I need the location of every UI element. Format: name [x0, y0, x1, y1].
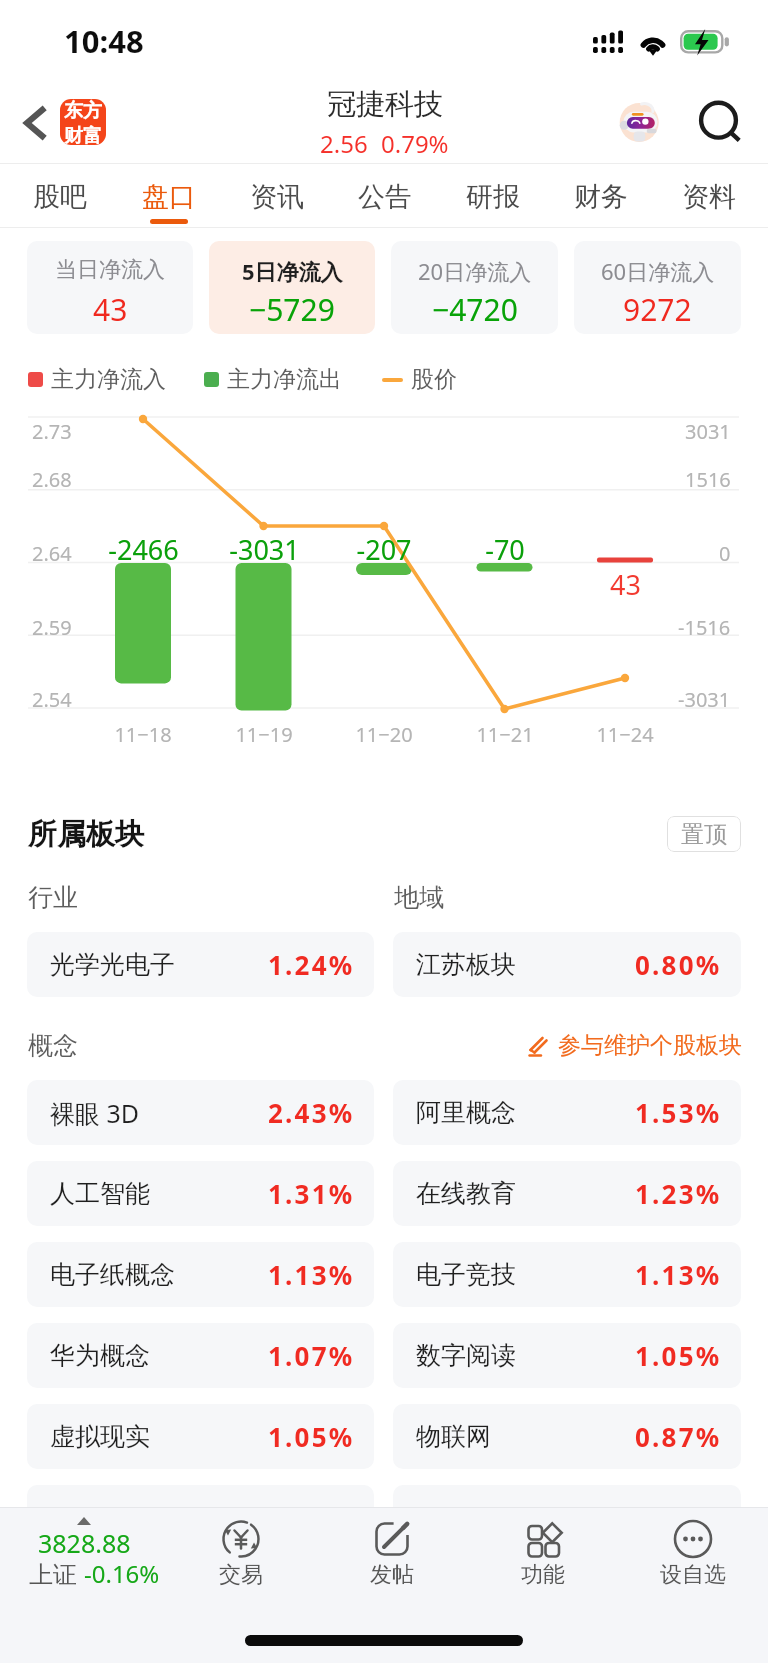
staticText: 虚拟现实	[50, 1421, 150, 1452]
staticText: 功能	[521, 1561, 565, 1589]
button[interactable]: 功能	[467, 1508, 618, 1603]
staticText: -207	[356, 531, 412, 568]
button[interactable]: 电子纸概念	[27, 1242, 374, 1307]
staticText: 3031	[685, 418, 731, 445]
button[interactable]	[27, 1485, 374, 1550]
staticText: -3031	[678, 686, 731, 713]
staticText: 11−19	[235, 721, 293, 748]
staticText: 资讯	[250, 180, 304, 214]
button[interactable]: 置顶	[667, 816, 741, 852]
staticText: 主力净流出	[227, 365, 342, 394]
button[interactable]: 研报	[439, 164, 547, 228]
staticText: 财务	[574, 180, 628, 214]
staticText: 人工智能	[50, 1178, 150, 1209]
staticText: 1.07%	[268, 1338, 355, 1373]
staticText: 11−18	[114, 721, 172, 748]
staticText: 1.13%	[635, 1257, 722, 1292]
staticText: 1516	[685, 466, 731, 493]
staticText: 江苏板块	[416, 949, 516, 980]
staticText: 10:48	[64, 20, 144, 62]
staticText: 资料	[682, 180, 736, 214]
button[interactable]: 资讯	[223, 164, 331, 228]
staticText: 1.53%	[635, 1095, 722, 1130]
button[interactable]: 20日净流入	[391, 241, 558, 334]
button[interactable]: 江苏板块	[393, 932, 741, 997]
staticText: 电子纸概念	[50, 1259, 175, 1290]
staticText: 发帖	[370, 1561, 414, 1589]
staticText: 2.64	[32, 540, 72, 567]
staticText: -1516	[678, 614, 731, 641]
staticText: 2.56	[320, 127, 368, 160]
staticText: 光学光电子	[50, 949, 175, 980]
staticText: 上证	[29, 1557, 84, 1590]
button[interactable]: 裸眼 3D	[27, 1080, 374, 1145]
staticText: 主力净流入	[51, 365, 166, 394]
staticText: -70	[485, 531, 525, 568]
staticText: 地域	[394, 882, 741, 913]
staticText: 2.73	[32, 418, 72, 445]
staticText: 60日净流入	[601, 256, 715, 286]
staticText: 11−21	[476, 721, 534, 748]
button[interactable]: 参与维护个股板块	[526, 1031, 742, 1060]
staticText: 0.79%	[381, 127, 449, 160]
staticText: 2.59	[32, 614, 72, 641]
button[interactable]: 发帖	[316, 1508, 467, 1603]
staticText: 置顶	[681, 820, 727, 849]
button[interactable]: Search	[696, 98, 742, 144]
button[interactable]: 电子竞技	[393, 1242, 741, 1307]
staticText: 东方	[64, 99, 102, 123]
staticText: 华为概念	[50, 1340, 150, 1371]
button[interactable]: East Money	[60, 99, 106, 145]
button[interactable]: 设自选	[617, 1508, 768, 1603]
button[interactable]	[393, 1485, 741, 1550]
button[interactable]: 当日净流入	[27, 241, 193, 334]
staticText: -2466	[108, 531, 179, 568]
button[interactable]: 股吧	[5, 164, 114, 228]
staticText: 1.23%	[635, 1176, 722, 1211]
button[interactable]: 数字阅读	[393, 1323, 741, 1388]
staticText: 20日净流入	[418, 256, 532, 286]
button[interactable]: 虚拟现实	[27, 1404, 374, 1469]
button[interactable]: 光学光电子	[27, 932, 374, 997]
staticText: 43	[610, 566, 641, 603]
staticText: 设自选	[660, 1561, 726, 1589]
staticText: 行业	[28, 882, 375, 913]
button[interactable]: Shanghai index	[0, 1508, 165, 1603]
staticText: 11−24	[596, 721, 654, 748]
staticText: 股价	[411, 365, 457, 394]
staticText: 43	[93, 289, 128, 330]
button[interactable]: 5日净流入	[209, 241, 375, 334]
button[interactable]: 在线教育	[393, 1161, 741, 1226]
button[interactable]: 财务	[547, 164, 655, 228]
staticText: 阿里概念	[416, 1097, 516, 1128]
button[interactable]: 物联网	[393, 1404, 741, 1469]
staticText: 股吧	[33, 180, 87, 214]
staticText: 11−20	[355, 721, 413, 748]
staticText: 1.31%	[268, 1176, 355, 1211]
button[interactable]: 盘口	[114, 164, 223, 228]
button[interactable]: 华为概念	[27, 1323, 374, 1388]
button[interactable]: 交易	[165, 1508, 316, 1603]
button[interactable]: 资料	[655, 164, 763, 228]
staticText: 0	[719, 540, 731, 567]
button[interactable]: 人工智能	[27, 1161, 374, 1226]
button[interactable]: 公告	[331, 164, 439, 228]
staticText: 概念	[28, 1030, 78, 1061]
staticText: 3828.88	[38, 1526, 131, 1560]
staticText: 数字阅读	[416, 1340, 516, 1371]
staticText: −5729	[249, 289, 335, 330]
button[interactable]: 60日净流入	[574, 241, 741, 334]
staticText: -0.16%	[84, 1557, 160, 1590]
button[interactable]: 阿里概念	[393, 1080, 741, 1145]
staticText: 盘口	[142, 180, 196, 214]
staticText: 2.54	[32, 686, 72, 713]
staticText: 2.43%	[268, 1095, 355, 1130]
staticText: −4720	[432, 289, 518, 330]
staticText: 冠捷科技	[327, 86, 443, 123]
button[interactable]: AI assistant	[617, 100, 662, 145]
staticText: 1.05%	[268, 1419, 355, 1454]
button[interactable]: Back	[10, 97, 62, 149]
staticText: 0.80%	[635, 947, 722, 982]
staticText: 9272	[623, 289, 692, 330]
staticText: 1.13%	[268, 1257, 355, 1292]
